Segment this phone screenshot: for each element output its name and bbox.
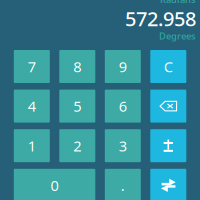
staticText: Degrees — [159, 30, 196, 42]
button[interactable]: Swap units — [150, 169, 186, 200]
staticText: 3 — [119, 136, 127, 155]
staticText: 0 — [50, 176, 58, 195]
button[interactable]: 8 — [59, 50, 95, 83]
button[interactable]: 1 — [14, 129, 50, 162]
button[interactable]: 7 — [14, 50, 50, 83]
button[interactable]: Toggle sign — [150, 129, 186, 162]
staticText: . — [121, 176, 125, 195]
staticText: 8 — [73, 57, 81, 76]
button[interactable]: 5 — [59, 90, 95, 123]
staticText: 9 — [119, 57, 127, 76]
staticText: 5 — [73, 96, 81, 116]
button[interactable]: 3 — [105, 129, 141, 162]
staticText: 6 — [119, 96, 127, 116]
staticText: 4 — [28, 96, 36, 116]
staticText: 2 — [73, 136, 81, 155]
staticText: 572.958 — [125, 5, 196, 32]
button[interactable]: 0 — [14, 169, 95, 200]
staticText: 7 — [28, 57, 36, 76]
staticText: 1 — [28, 136, 36, 155]
button[interactable]: 9 — [105, 50, 141, 83]
button[interactable]: 2 — [59, 129, 95, 162]
button[interactable]: Delete — [150, 90, 186, 123]
button[interactable]: 4 — [14, 90, 50, 123]
button[interactable]: 6 — [105, 90, 141, 123]
button[interactable]: . — [105, 169, 141, 200]
button[interactable]: C — [150, 50, 186, 83]
staticText: C — [164, 57, 173, 76]
staticText: Radians — [160, 0, 196, 6]
